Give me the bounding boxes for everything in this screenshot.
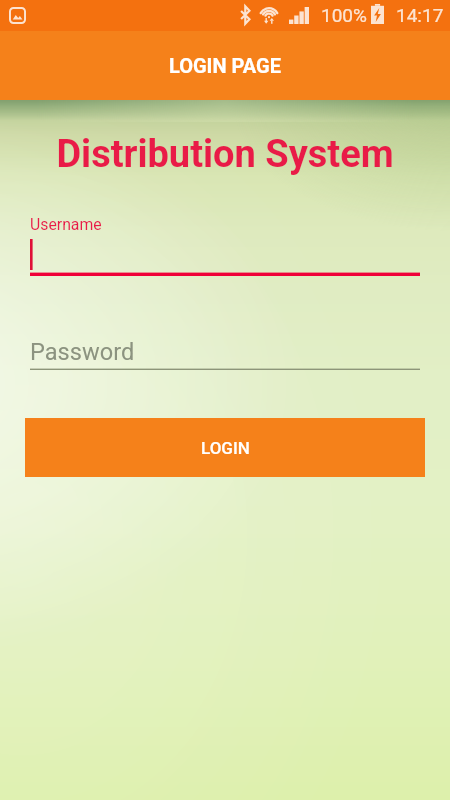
staticText: Username xyxy=(30,215,102,234)
other: Screenshot xyxy=(9,7,26,24)
staticText: LOGIN PAGE xyxy=(169,54,281,77)
staticText: 100% xyxy=(321,4,367,26)
staticText: 14:17 xyxy=(396,4,444,26)
button[interactable]: Password input xyxy=(30,334,420,370)
staticText: LOGIN xyxy=(201,438,250,458)
button[interactable]: LOGIN xyxy=(25,418,425,477)
staticText: Distribution System xyxy=(0,132,450,177)
staticText: Password xyxy=(30,338,135,366)
button[interactable]: Username input xyxy=(30,238,420,276)
